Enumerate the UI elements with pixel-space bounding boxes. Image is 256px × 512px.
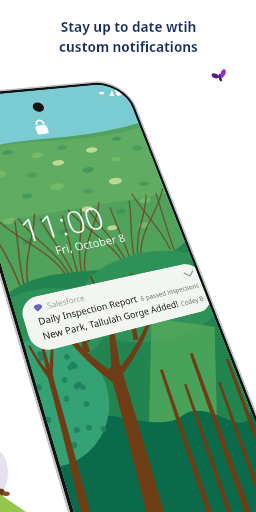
button[interactable]: Salesforce	[18, 262, 211, 354]
staticText: Daily Inspection Report	[36, 293, 140, 328]
staticText: Stay up to date wtih custom notification…	[59, 18, 198, 56]
staticText: New Park, Tallulah Gorge Added!	[41, 298, 180, 343]
staticText: Fri, October 8	[53, 230, 127, 257]
staticText: Salesforce	[45, 292, 86, 310]
staticText: 6 passed inspections, 1 faile...	[139, 281, 200, 304]
staticText: Codey Bear add... 4	[179, 294, 205, 309]
staticText: 11:00	[15, 197, 110, 253]
